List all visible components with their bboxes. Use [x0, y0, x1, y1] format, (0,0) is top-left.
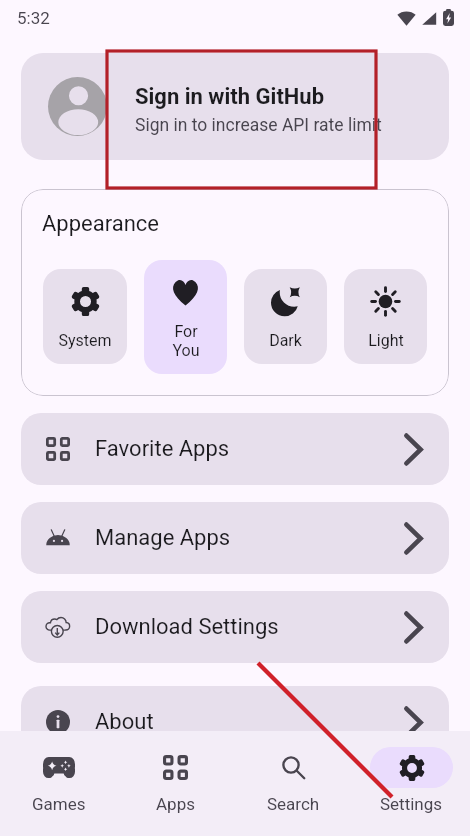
staticText: For You [172, 322, 200, 360]
button[interactable]: System [43, 269, 127, 364]
staticText: Search [267, 794, 320, 814]
staticText: About [95, 709, 154, 735]
button[interactable]: About [21, 686, 449, 758]
staticText: System [58, 331, 112, 350]
button[interactable]: Manage Apps [21, 502, 449, 574]
staticText: 5:32 [17, 8, 50, 28]
staticText: Settings [380, 794, 443, 814]
staticText: Light [368, 331, 404, 350]
button[interactable]: Apps [117, 731, 234, 814]
staticText: Sign in to increase API rate limit [135, 115, 382, 136]
button[interactable]: Light [344, 269, 427, 364]
button[interactable]: Settings [352, 731, 470, 814]
staticText: Appearance [42, 211, 160, 237]
staticText: Apps [156, 794, 195, 814]
button[interactable]: Games [0, 731, 117, 814]
button[interactable]: Sign in with GitHub [21, 53, 449, 160]
button[interactable]: Search [234, 731, 352, 814]
button[interactable]: Dark [244, 269, 327, 364]
staticText: Manage Apps [95, 525, 231, 551]
staticText: Download Settings [95, 614, 279, 640]
staticText: Games [32, 794, 86, 814]
button[interactable]: For You [144, 260, 227, 374]
button[interactable]: Download Settings [21, 591, 449, 663]
staticText: Sign in with GitHub [135, 84, 325, 110]
staticText: Favorite Apps [95, 436, 230, 462]
staticText: Dark [269, 331, 302, 350]
button[interactable]: Favorite Apps [21, 413, 449, 485]
